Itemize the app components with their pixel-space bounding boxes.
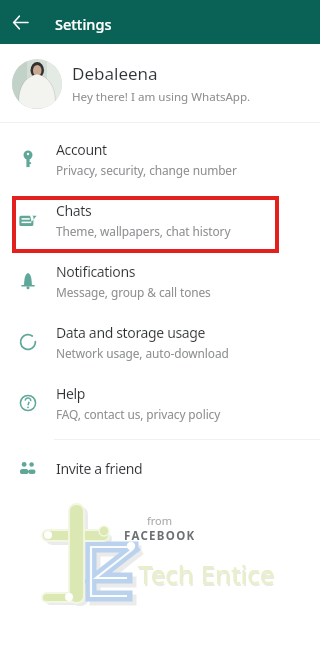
staticText: Debaleena [72, 62, 158, 85]
button[interactable]: Help [0, 377, 320, 429]
staticText: Privacy, security, change number [56, 162, 237, 178]
button[interactable]: Debaleena [0, 45, 320, 122]
staticText: Chats [56, 201, 92, 220]
staticText: from [147, 513, 173, 528]
staticText: Notifications [56, 262, 136, 281]
staticText: Theme, wallpapers, chat history [56, 223, 231, 239]
button[interactable]: Back [0, 2, 40, 42]
staticText: Account [56, 140, 107, 159]
staticText: Message, group & call tones [56, 284, 211, 300]
staticText: FAQ, contact us, privacy policy [56, 406, 221, 422]
button[interactable]: Account [0, 133, 320, 185]
staticText: Data and storage usage [56, 323, 206, 342]
staticText: Tech Entice [138, 556, 275, 591]
button[interactable]: Chats [0, 194, 320, 246]
staticText: Invite a friend [56, 459, 143, 478]
staticText: FACEBOOK [124, 528, 196, 544]
button[interactable]: Invite a friend [0, 448, 320, 488]
staticText: Hey there! I am using WhatsApp. [72, 89, 251, 105]
button[interactable]: Notifications [0, 255, 320, 307]
button[interactable]: Data and storage usage [0, 316, 320, 368]
staticText: Settings [55, 14, 112, 34]
staticText: Help [56, 384, 86, 403]
staticText: Network usage, auto-download [56, 345, 229, 361]
staticText: Tech Entice [139, 558, 276, 593]
